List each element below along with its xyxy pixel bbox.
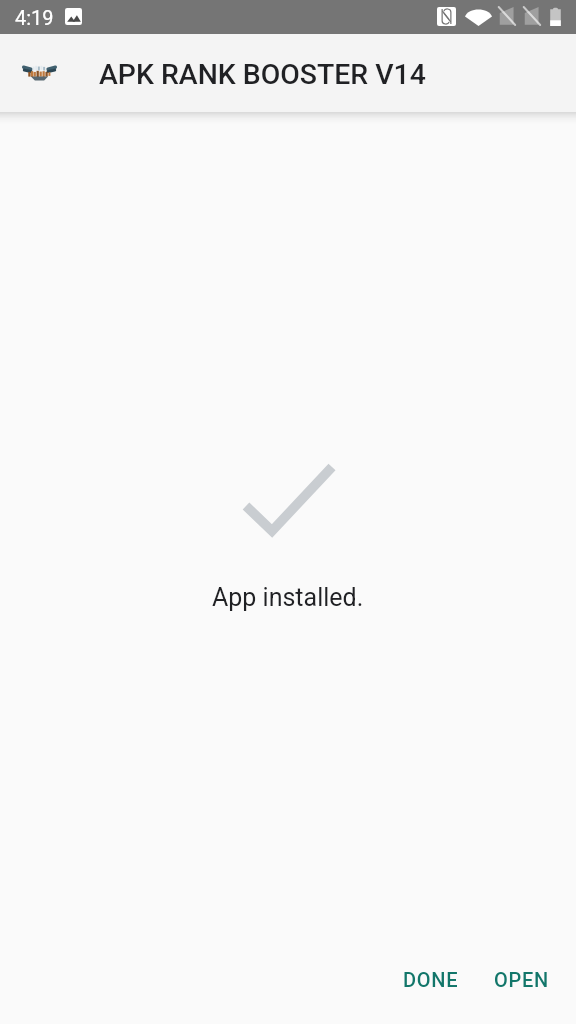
staticText: DONE xyxy=(403,968,459,991)
staticText: 4:19 xyxy=(15,6,54,29)
staticText: OPEN xyxy=(494,968,549,991)
staticText: APK RANK BOOSTER V14 xyxy=(99,58,426,91)
staticText: App installed. xyxy=(212,583,364,612)
button[interactable]: DONE xyxy=(389,958,473,1001)
button[interactable]: OPEN xyxy=(480,958,563,1001)
other: App icon xyxy=(23,64,56,82)
